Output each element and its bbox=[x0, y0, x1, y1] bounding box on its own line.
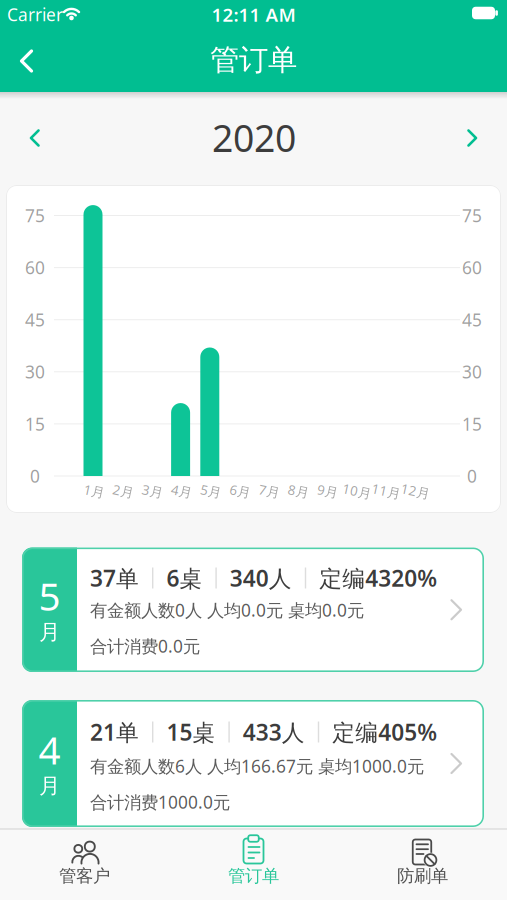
staticText: 防刷单 bbox=[397, 865, 448, 887]
staticText: 5月 bbox=[200, 482, 221, 500]
staticText: 10月 bbox=[342, 482, 371, 500]
staticText: 0 bbox=[30, 464, 40, 487]
staticText: 4月 bbox=[171, 482, 192, 500]
staticText: Carrier bbox=[7, 3, 63, 26]
button[interactable]: 管订单 bbox=[169, 829, 338, 900]
staticText: 15 bbox=[25, 412, 45, 435]
staticText: 75 bbox=[25, 204, 45, 227]
staticText: 75 bbox=[462, 204, 482, 227]
staticText: 管客户 bbox=[59, 865, 110, 887]
staticText: 1月 bbox=[83, 482, 104, 500]
staticText: 2月 bbox=[113, 482, 134, 500]
staticText: 管订单 bbox=[210, 42, 297, 78]
staticText: 15桌 bbox=[166, 717, 215, 747]
staticText: 月 bbox=[39, 773, 60, 799]
staticText: 合计消费0.0元 bbox=[90, 634, 200, 657]
staticText: 30 bbox=[25, 360, 45, 383]
staticText: 60 bbox=[25, 256, 45, 279]
staticText: 4 bbox=[38, 724, 60, 775]
staticText: 有金额人数6人 人均166.67元 桌均1000.0元 bbox=[90, 754, 424, 777]
staticText: 0 bbox=[467, 464, 477, 487]
button[interactable]: 防刷单 bbox=[338, 829, 507, 900]
staticText: 60 bbox=[462, 256, 482, 279]
staticText: 30 bbox=[462, 360, 482, 383]
staticText: 12:11 AM bbox=[211, 2, 295, 27]
staticText: 15 bbox=[462, 412, 482, 435]
button[interactable]: 4 bbox=[22, 700, 484, 827]
staticText: 有金额人数0人 人均0.0元 桌均0.0元 bbox=[90, 598, 364, 621]
staticText: 340人 bbox=[230, 563, 292, 593]
button[interactable] bbox=[453, 121, 487, 155]
button[interactable] bbox=[4, 39, 48, 83]
staticText: 5 bbox=[38, 570, 60, 621]
staticText: 45 bbox=[25, 308, 45, 331]
button[interactable] bbox=[19, 121, 53, 155]
staticText: 9月 bbox=[317, 482, 338, 500]
staticText: 11月 bbox=[371, 482, 400, 500]
staticText: 月 bbox=[39, 619, 60, 645]
staticText: 定编4320% bbox=[319, 563, 437, 593]
staticText: 7月 bbox=[259, 482, 280, 500]
staticText: 6桌 bbox=[166, 563, 202, 593]
staticText: 管订单 bbox=[228, 865, 279, 887]
staticText: 45 bbox=[462, 308, 482, 331]
staticText: 2020 bbox=[212, 113, 296, 162]
staticText: 433人 bbox=[243, 717, 305, 747]
staticText: 37单 bbox=[90, 563, 139, 593]
staticText: 合计消费1000.0元 bbox=[90, 790, 230, 813]
staticText: 8月 bbox=[288, 482, 309, 500]
staticText: 21单 bbox=[90, 717, 139, 747]
staticText: 3月 bbox=[142, 482, 163, 500]
button[interactable]: 管客户 bbox=[0, 829, 169, 900]
staticText: 12月 bbox=[401, 482, 430, 500]
staticText: 定编405% bbox=[332, 717, 437, 747]
staticText: 6月 bbox=[229, 482, 250, 500]
button[interactable]: 5 bbox=[22, 547, 484, 672]
